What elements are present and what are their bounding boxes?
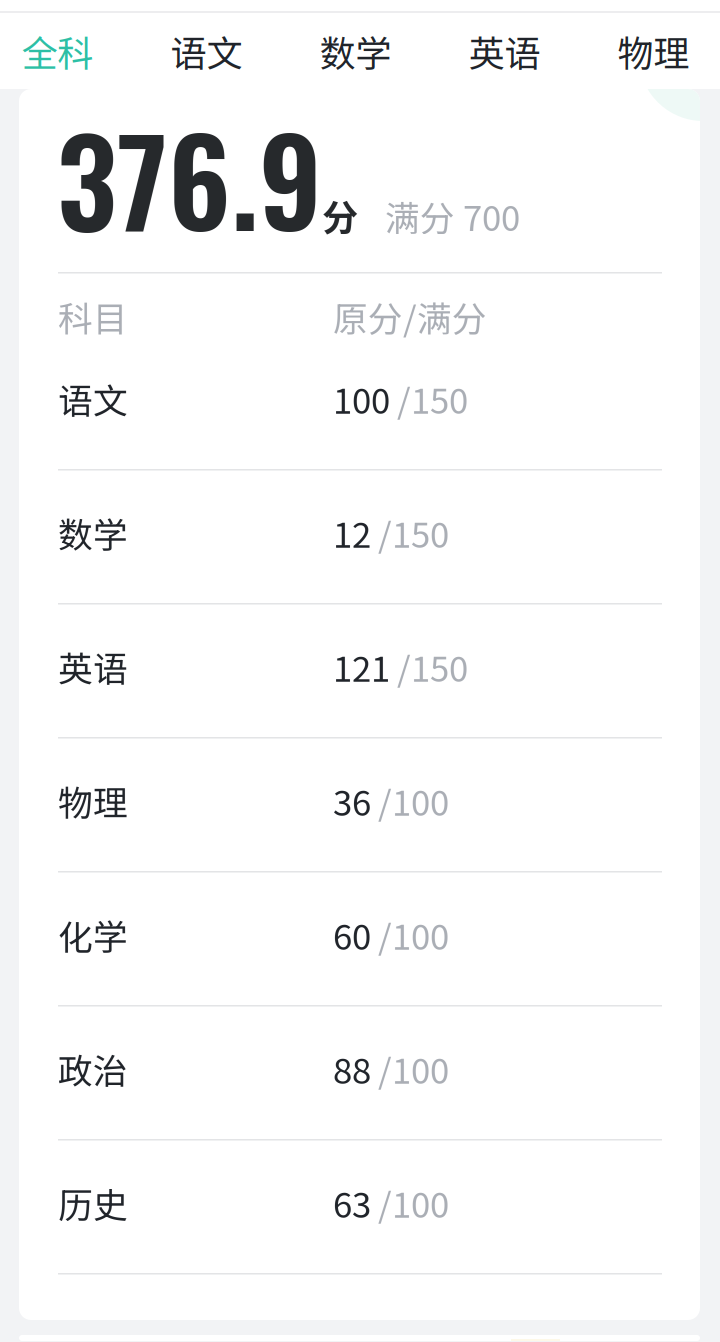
staticText: 12 bbox=[333, 507, 371, 558]
staticText: 语文 bbox=[58, 373, 128, 424]
staticText: 物理 bbox=[617, 25, 689, 77]
staticText: /100 bbox=[378, 775, 449, 826]
staticText: 物理 bbox=[58, 775, 128, 826]
staticText: 63 bbox=[333, 1177, 371, 1228]
staticText: 数学 bbox=[319, 25, 391, 77]
staticText: 分 bbox=[322, 189, 358, 241]
staticText: 原分/满分 bbox=[333, 291, 487, 342]
staticText: 科目 bbox=[58, 291, 128, 342]
button[interactable]: 政治 bbox=[19, 1006, 700, 1139]
staticText: 历史 bbox=[58, 1177, 128, 1228]
button[interactable]: 英语 bbox=[470, 13, 539, 89]
staticText: /150 bbox=[378, 507, 449, 558]
staticText: 化学 bbox=[58, 909, 128, 960]
staticText: 121 bbox=[333, 641, 390, 692]
staticText: 376.9 bbox=[57, 89, 322, 265]
staticText: 语文 bbox=[170, 25, 242, 77]
button[interactable]: 语文 bbox=[172, 13, 241, 89]
staticText: /100 bbox=[378, 1043, 449, 1094]
button[interactable]: 数学 bbox=[321, 13, 390, 89]
staticText: 全科 bbox=[21, 25, 93, 77]
staticText: 88 bbox=[333, 1043, 371, 1094]
staticText: /100 bbox=[378, 1177, 449, 1228]
button[interactable]: 历史 bbox=[19, 1140, 700, 1273]
staticText: /150 bbox=[397, 641, 468, 692]
staticText: 英语 bbox=[58, 641, 128, 692]
button[interactable]: 物理 bbox=[619, 13, 688, 89]
staticText: /100 bbox=[378, 909, 449, 960]
button[interactable]: 英语 bbox=[19, 604, 700, 737]
button[interactable]: 全科 bbox=[23, 13, 92, 89]
staticText: 100 bbox=[333, 373, 390, 424]
staticText: 60 bbox=[333, 909, 371, 960]
button[interactable]: 化学 bbox=[19, 872, 700, 1005]
button[interactable]: 数学 bbox=[19, 470, 700, 603]
staticText: 满分 700 bbox=[385, 191, 520, 241]
staticText: 英语 bbox=[468, 25, 540, 77]
button[interactable]: 物理 bbox=[19, 738, 700, 871]
staticText: /150 bbox=[397, 373, 468, 424]
button[interactable]: 语文 bbox=[19, 336, 700, 469]
staticText: 数学 bbox=[58, 507, 128, 558]
staticText: 36 bbox=[333, 775, 371, 826]
staticText: 政治 bbox=[58, 1043, 128, 1094]
